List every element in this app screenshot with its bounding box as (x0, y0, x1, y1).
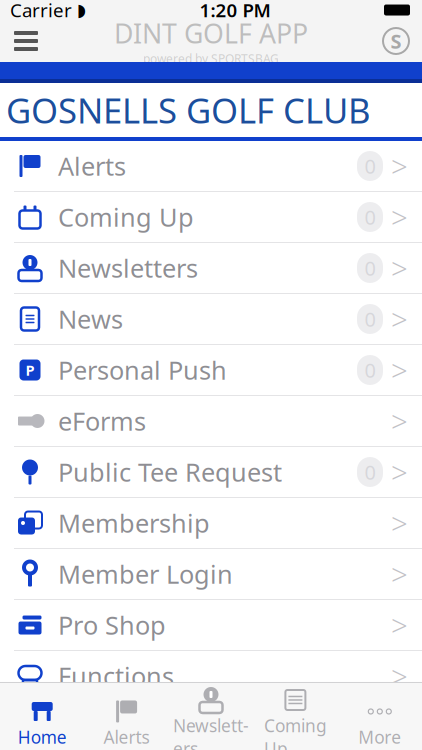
staticText: 0 (364, 204, 375, 230)
staticText: Personal Push (58, 353, 227, 387)
button[interactable]: Alerts (0, 141, 422, 192)
button[interactable]: Alerts (84, 694, 169, 750)
staticText: GOSNELLS GOLF CLUB (6, 86, 371, 134)
button[interactable]: Coming Up (0, 192, 422, 243)
staticText: > (391, 656, 408, 695)
staticText: Newsletters (58, 251, 198, 285)
staticText: 0 (364, 459, 375, 485)
staticText: 1:20 PM (199, 0, 270, 22)
staticText: > (391, 605, 408, 644)
button[interactable]: eForms (0, 396, 422, 447)
staticText: Public Tee Request (58, 455, 282, 489)
staticText: > (391, 350, 408, 389)
staticText: 0 (364, 255, 375, 281)
button[interactable]: Pro Shop (0, 600, 422, 651)
button[interactable]: P (0, 345, 422, 396)
staticText: > (391, 146, 408, 185)
button[interactable]: Membership (0, 498, 422, 549)
staticText: Coming Up (264, 714, 327, 750)
staticText: > (391, 503, 408, 542)
staticText: 0 (364, 153, 375, 179)
staticText: > (391, 554, 408, 593)
staticText: > (391, 401, 408, 440)
staticText: 0 (364, 306, 375, 332)
staticText: S (390, 28, 401, 54)
staticText: Alerts (58, 149, 126, 183)
staticText: News (58, 302, 123, 336)
button[interactable]: Member Login (0, 549, 422, 600)
button[interactable]: Coming Up (253, 683, 338, 750)
staticText: Carrier (10, 0, 72, 22)
button[interactable]: Newsletters (169, 683, 253, 750)
staticText: > (391, 452, 408, 491)
button[interactable]: Newsletters (0, 243, 422, 294)
staticText: Home (18, 725, 67, 748)
staticText: eForms (58, 404, 146, 438)
staticText: Newsletters (173, 714, 249, 750)
button[interactable]: News (0, 294, 422, 345)
button[interactable]: More (338, 694, 422, 750)
staticText: Membership (58, 506, 210, 540)
staticText: > (391, 248, 408, 287)
staticText: > (391, 197, 408, 236)
staticText: More (358, 725, 401, 748)
staticText: Functions (58, 659, 174, 693)
staticText: Member Login (58, 557, 233, 591)
staticText: ◗ (77, 0, 86, 20)
staticText: powered by SPORTSBAG (143, 51, 279, 67)
staticText: Pro Shop (58, 608, 166, 642)
staticText: 0 (364, 357, 375, 383)
button[interactable]: Sync (370, 20, 422, 62)
button[interactable]: Menu (0, 20, 52, 62)
staticText: DINT GOLF APP (114, 15, 308, 51)
button[interactable]: Public Tee Request (0, 447, 422, 498)
staticText: Alerts (104, 725, 150, 748)
button[interactable]: Functions (0, 651, 422, 702)
staticText: Coming Up (58, 200, 194, 234)
staticText: P (25, 360, 34, 380)
staticText: > (391, 299, 408, 338)
button[interactable]: Home (0, 694, 84, 750)
